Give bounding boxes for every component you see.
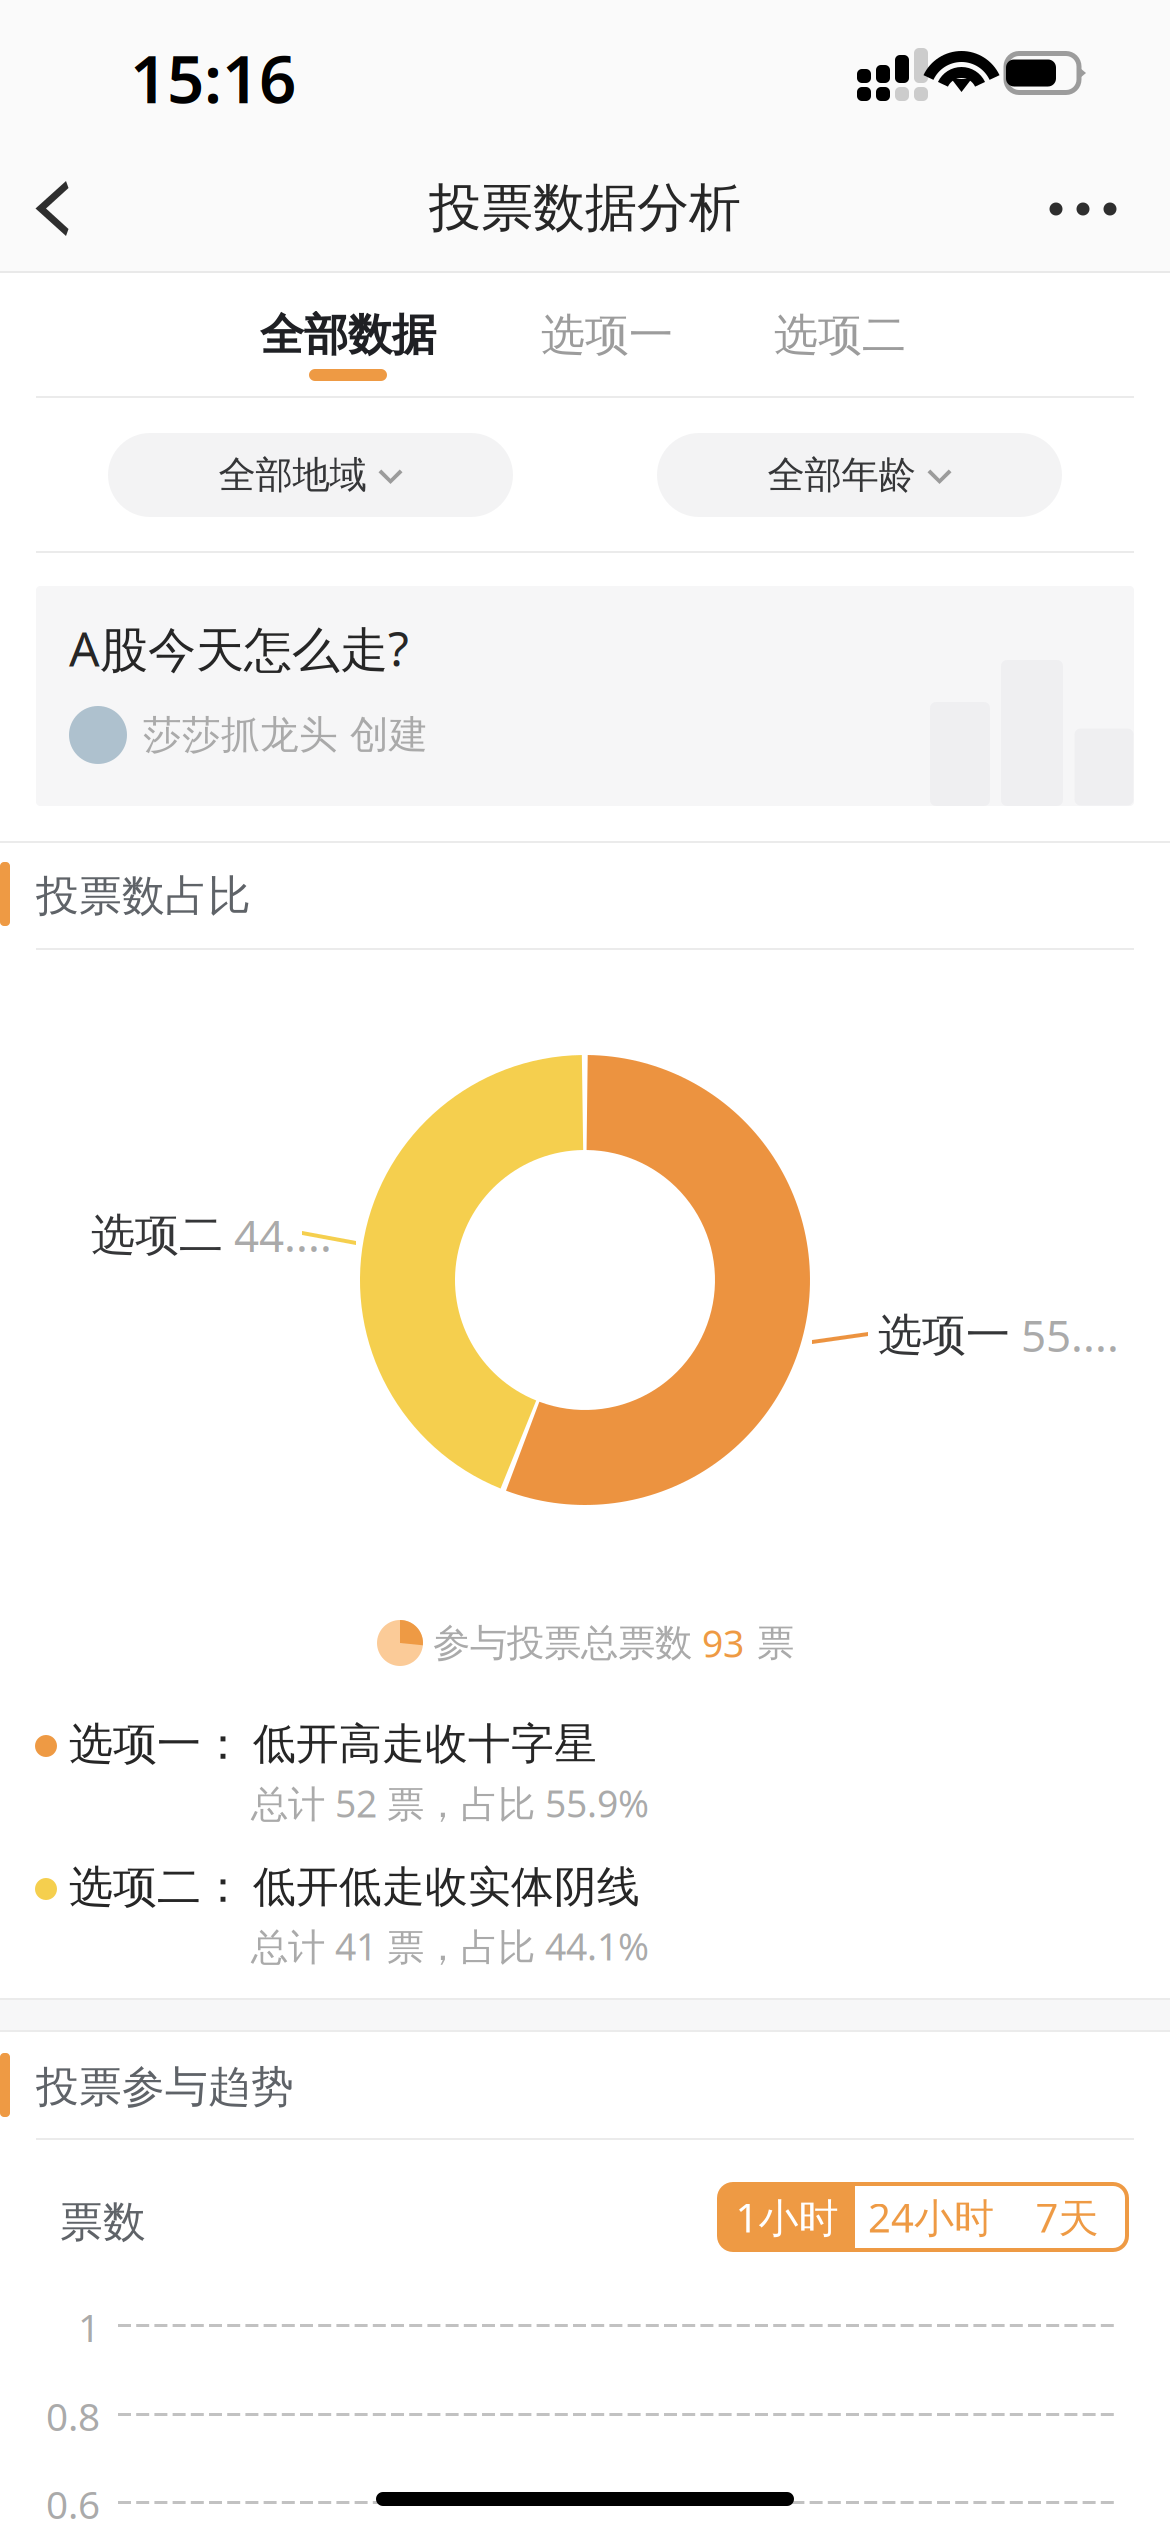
staticText: 1 [78, 2301, 100, 2353]
staticText: 总计 52 票，占比 55.9% [251, 1778, 649, 1828]
button[interactable]: 7天 [1007, 2184, 1127, 2250]
staticText: 选项二： [69, 1860, 245, 1914]
staticText: 票数 [60, 2196, 146, 2248]
staticText: 93 [702, 1618, 744, 1668]
staticText: 低开高走收十字星 [253, 1718, 597, 1770]
staticText: 选项二 [774, 308, 906, 362]
button[interactable]: 选项二 [750, 306, 930, 364]
staticText: 选项一 [541, 308, 673, 362]
staticText: 投票数据分析 [429, 176, 741, 240]
staticText: 投票数占比 [36, 870, 251, 922]
staticText: 0.6 [46, 2478, 100, 2530]
staticText: 24小时 [868, 2190, 994, 2243]
staticText: 低开低走收实体阴线 [253, 1861, 640, 1913]
staticText: 全部数据 [260, 308, 436, 362]
button[interactable]: A股今天怎么走? [36, 586, 1134, 806]
button[interactable]: 选项一 [517, 306, 697, 364]
staticText: 参与投票总票数 [433, 1620, 692, 1666]
staticText: 44.... [234, 1206, 332, 1264]
button[interactable]: 全部数据 [233, 306, 463, 364]
staticText: 7天 [1035, 2190, 1098, 2243]
staticText: 选项一： [69, 1717, 245, 1771]
button[interactable]: 更多 [1016, 150, 1150, 268]
staticText: 投票参与趋势 [36, 2061, 294, 2113]
staticText: 选项一 [878, 1308, 1010, 1362]
staticText: 总计 41 票，占比 44.1% [251, 1921, 649, 1971]
staticText: 全部年龄 [767, 452, 915, 498]
button[interactable]: 返回 [0, 150, 104, 268]
staticText: A股今天怎么走? [69, 616, 409, 680]
staticText: 55.... [1021, 1306, 1119, 1364]
staticText: 选项二 [91, 1208, 223, 1262]
staticText: 0.8 [46, 2390, 100, 2442]
staticText: 票 [757, 1620, 794, 1666]
staticText: 莎莎抓龙头 创建 [143, 711, 428, 759]
staticText: 全部地域 [218, 452, 366, 498]
button[interactable]: 24小时 [855, 2184, 1007, 2250]
button[interactable]: 全部地域 [108, 433, 513, 517]
button[interactable]: 1小时 [719, 2184, 855, 2250]
staticText: 15:16 [130, 35, 296, 121]
button[interactable]: 全部年龄 [657, 433, 1062, 517]
staticText: 1小时 [735, 2190, 838, 2243]
